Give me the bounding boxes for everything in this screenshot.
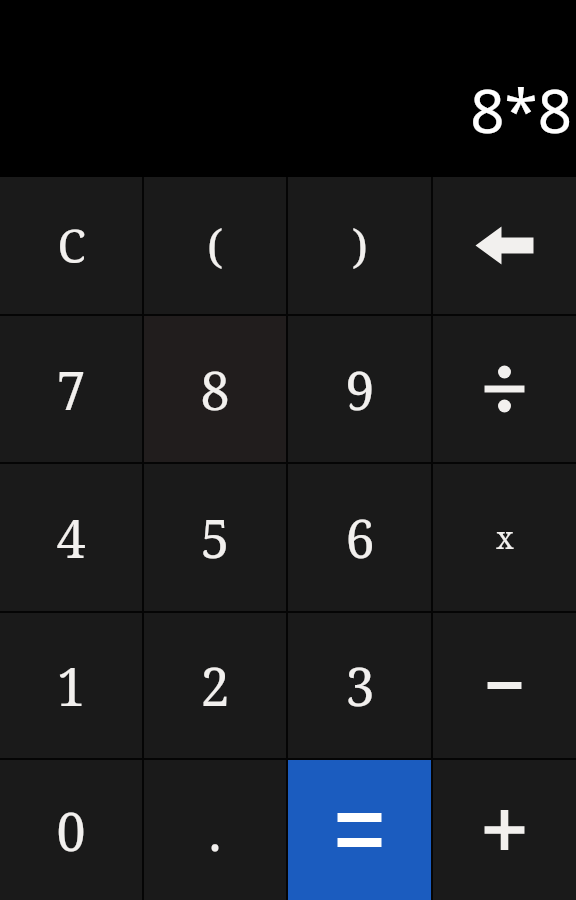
button[interactable]: 1	[0, 613, 142, 758]
button[interactable]: x	[433, 464, 576, 611]
staticText: 4	[56, 502, 86, 573]
staticText: 3	[345, 650, 375, 721]
staticText: (	[207, 214, 223, 277]
staticText: 0	[56, 795, 86, 866]
button[interactable]: 5	[144, 464, 286, 611]
button[interactable]: (	[144, 177, 286, 314]
staticText: 5	[200, 502, 230, 573]
button[interactable]: Minus	[433, 613, 576, 758]
button[interactable]: 8	[144, 316, 286, 462]
button[interactable]: Backspace	[433, 177, 576, 314]
button[interactable]: Plus	[433, 760, 576, 900]
staticText: )	[352, 214, 368, 277]
button[interactable]: 7	[0, 316, 142, 462]
button[interactable]: 0	[0, 760, 142, 900]
button[interactable]: .	[144, 760, 286, 900]
button[interactable]: 4	[0, 464, 142, 611]
button[interactable]: )	[288, 177, 431, 314]
button[interactable]: 6	[288, 464, 431, 611]
button[interactable]: Divide	[433, 316, 576, 462]
button[interactable]: 3	[288, 613, 431, 758]
staticText: x	[496, 517, 514, 558]
staticText: 6	[345, 502, 375, 573]
staticText: 1	[56, 650, 86, 721]
staticText: 9	[345, 354, 375, 425]
staticText: 8*8	[470, 69, 572, 151]
button[interactable]: 2	[144, 613, 286, 758]
staticText: C	[57, 214, 86, 277]
button[interactable]: C	[0, 177, 142, 314]
button[interactable]: Equals	[288, 760, 431, 900]
staticText: .	[208, 795, 222, 866]
staticText: 7	[56, 354, 86, 425]
staticText: 8	[200, 354, 230, 425]
staticText: 2	[200, 650, 230, 721]
button[interactable]: 9	[288, 316, 431, 462]
